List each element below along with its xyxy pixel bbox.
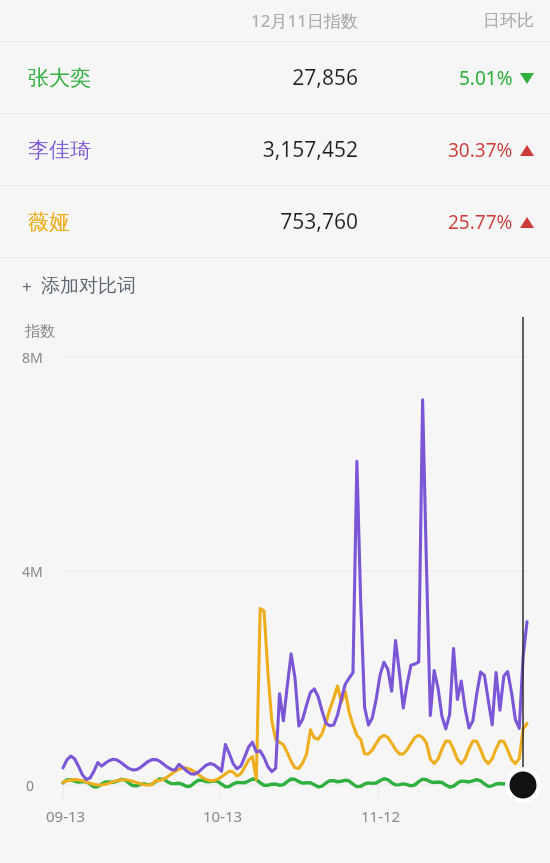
staticText: 薇娅 — [28, 209, 70, 235]
staticText: 12月11日指数 — [150, 9, 358, 32]
other: Decrease — [520, 73, 534, 84]
staticText: 11-12 — [361, 806, 401, 826]
button[interactable]: + — [0, 258, 550, 314]
staticText: 指数 — [25, 322, 55, 341]
other: Increase — [520, 217, 534, 228]
button[interactable]: 李佳琦 — [0, 114, 550, 185]
staticText: 25.77% — [448, 209, 513, 235]
staticText: 3,157,452 — [150, 135, 358, 164]
staticText: 5.01% — [459, 65, 513, 91]
button[interactable]: 张大奕 — [0, 42, 550, 113]
other: Increase — [520, 145, 534, 156]
staticText: 30.37% — [448, 137, 513, 163]
staticText: 张大奕 — [28, 65, 91, 91]
staticText: 4M — [22, 562, 43, 581]
staticText: 添加对比词 — [41, 274, 136, 298]
staticText: 日环比 — [483, 10, 534, 31]
staticText: + — [22, 275, 32, 298]
staticText: 09-13 — [46, 806, 86, 826]
staticText: 753,760 — [150, 207, 358, 236]
staticText: 10-13 — [203, 806, 243, 826]
staticText: 8M — [22, 348, 43, 367]
staticText: 李佳琦 — [28, 137, 91, 163]
button[interactable]: 薇娅 — [0, 186, 550, 257]
staticText: 27,856 — [150, 63, 358, 92]
staticText: 0 — [26, 776, 35, 795]
